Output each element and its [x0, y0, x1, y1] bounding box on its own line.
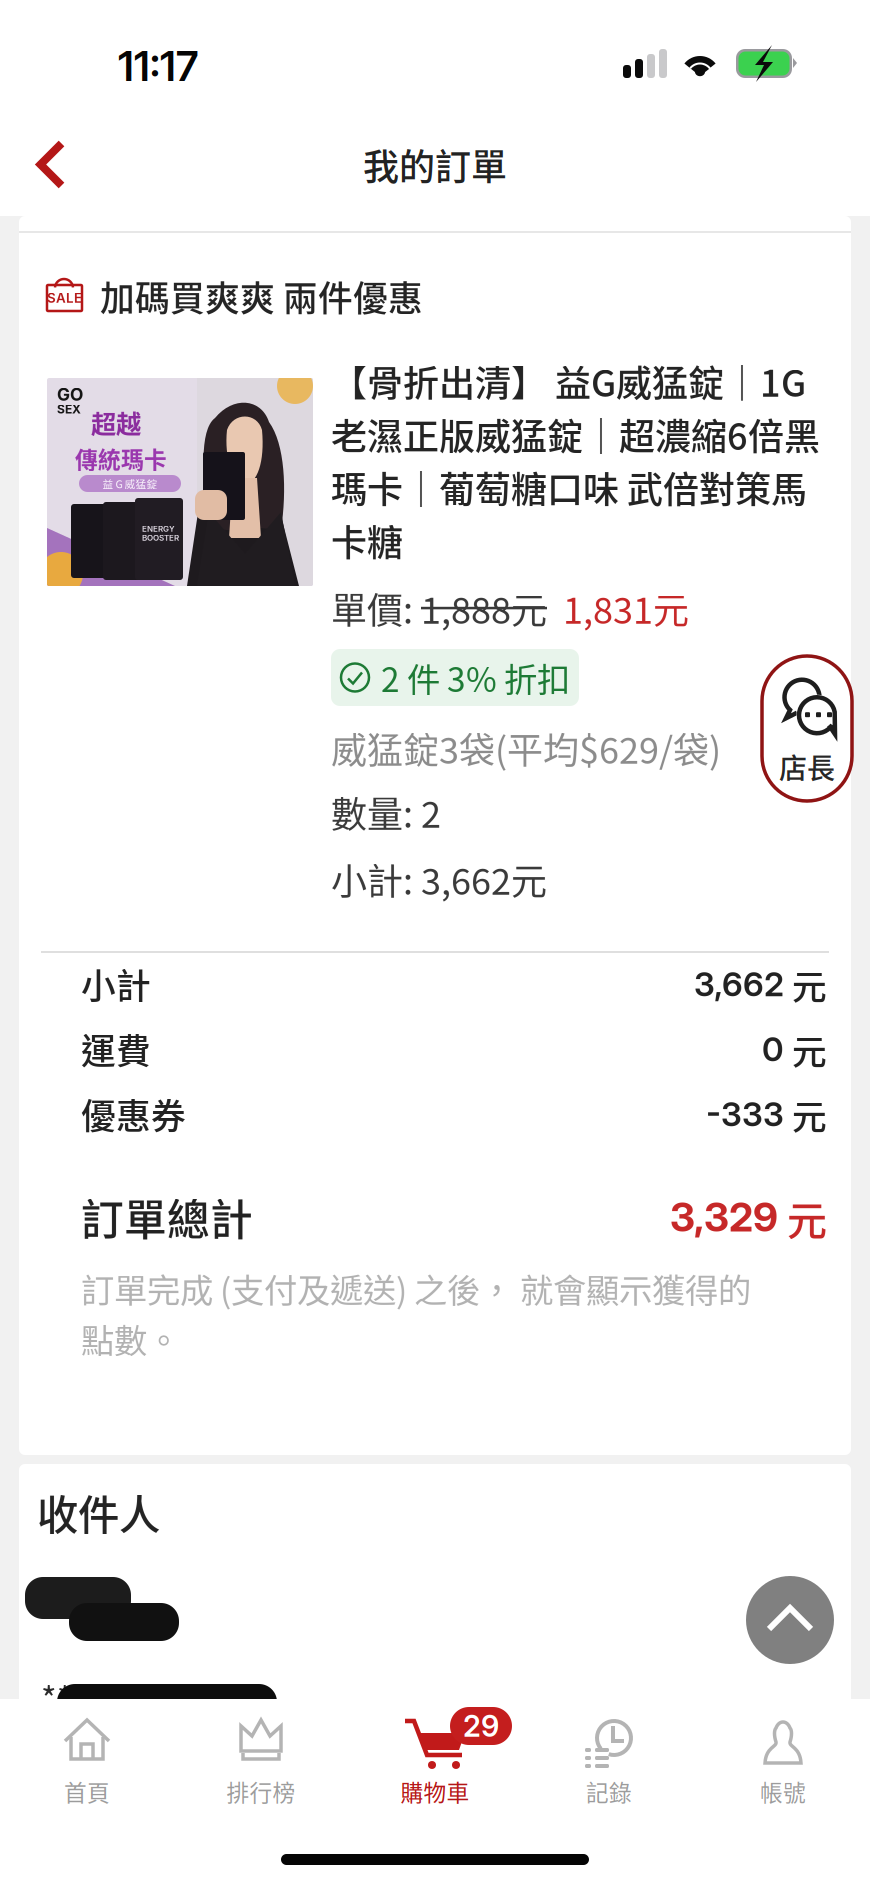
staticText: 元 [784, 960, 827, 1010]
staticText: 收件人 [37, 1482, 160, 1542]
staticText: 老濕正版威猛錠｜超濃縮6倍黑 [331, 408, 820, 460]
staticText: 卡糖 [331, 514, 403, 566]
button[interactable]: 首頁 [0, 1699, 174, 1821]
staticText: 小計 [81, 959, 151, 1009]
staticText: 1,831元 [547, 582, 689, 634]
button[interactable]: 記錄 [522, 1699, 696, 1821]
staticText: 記錄 [586, 1775, 632, 1808]
staticText: 加碼買爽爽 兩件優惠 [100, 271, 423, 321]
staticText: 3,329 [670, 1193, 778, 1241]
staticText: BOOSTER [142, 533, 179, 543]
button[interactable]: Scroll to top [746, 1576, 834, 1664]
staticText: GO [57, 384, 83, 405]
staticText: 29 [463, 1708, 499, 1744]
staticText: 元 [784, 1090, 827, 1140]
staticText: 瑪卡｜葡萄糖口味 武倍對策馬 [331, 461, 807, 513]
staticText: 2 件 3% 折扣 [381, 653, 570, 702]
staticText: 小計: 3,662元 [331, 853, 547, 905]
staticText: 元 [778, 1189, 827, 1247]
staticText: 帳號 [760, 1775, 806, 1808]
staticText: 【骨折出清】 益G威猛錠｜1G [331, 355, 806, 407]
staticText: 店長 [779, 746, 835, 787]
staticText: 益 G 威猛錠 [102, 476, 157, 491]
staticText: 0 [762, 1029, 784, 1069]
staticText: 購物車 [400, 1775, 469, 1808]
button[interactable]: 店長 [762, 656, 852, 801]
button[interactable]: Back [8, 121, 94, 207]
staticText: * [74, 1594, 90, 1642]
staticText: 優惠券 [81, 1089, 186, 1139]
staticText: 1,888元 [421, 582, 547, 634]
staticText: 點數。 [81, 1314, 180, 1363]
staticText: 傳統瑪卡 [75, 442, 167, 475]
staticText: 威猛錠3袋(平均$629/袋) [331, 722, 721, 774]
staticText: 超越 [91, 404, 141, 441]
button[interactable]: 帳號 [696, 1699, 870, 1821]
staticText: 3,662 [694, 964, 784, 1004]
staticText: 數量: 2 [331, 786, 441, 838]
staticText: 11:17 [118, 41, 198, 91]
staticText: ********** [41, 1673, 201, 1721]
staticText: 我的訂單 [363, 138, 507, 190]
staticText: SALE [47, 290, 82, 306]
staticText: 元 [784, 1025, 827, 1075]
staticText: 訂單總計 [81, 1186, 253, 1248]
staticText: SEX [57, 402, 81, 416]
staticText: 排行榜 [226, 1775, 295, 1808]
staticText: 運費 [81, 1024, 151, 1074]
staticText: 單價: [331, 582, 421, 634]
staticText: ENERGY [142, 524, 175, 534]
staticText: 首頁 [64, 1775, 110, 1808]
button[interactable]: 29 [348, 1699, 522, 1821]
staticText: 訂單完成 (支付及遞送) 之後， 就會顯示獲得的 [81, 1264, 751, 1312]
staticText: -333 [706, 1094, 784, 1134]
button[interactable]: 排行榜 [174, 1699, 348, 1821]
